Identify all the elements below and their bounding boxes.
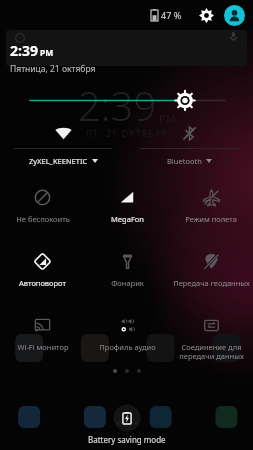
staticText: MegaFon [111, 214, 144, 224]
button[interactable]: Фонарик [85, 242, 169, 306]
button[interactable]: Bluetooth [126, 118, 253, 178]
button[interactable]: Search [6, 30, 247, 66]
staticText: Соединение для передачи данных [179, 342, 244, 361]
button[interactable]: Соединение для передачи данных [169, 306, 253, 364]
staticText: Профиль аудио [99, 342, 156, 352]
staticText: Фонарик [111, 278, 144, 288]
button[interactable]: Режим полета [169, 178, 253, 242]
staticText: PM [159, 111, 176, 126]
button[interactable]: Wi-Fi монитор [0, 306, 85, 364]
button[interactable]: MegaFon [85, 178, 169, 242]
button[interactable]: Профиль аудио [85, 306, 169, 364]
button[interactable]: Brightness [0, 80, 253, 118]
staticText: PM [40, 47, 54, 59]
staticText: 47 % [161, 9, 182, 21]
button[interactable]: Автоповорот [0, 242, 85, 306]
staticText: Автоповорот [19, 278, 66, 288]
staticText: Battery saving mode [88, 434, 166, 445]
staticText: Не беспокоить [16, 214, 70, 224]
staticText: Wi-Fi монитор [17, 342, 69, 352]
staticText: Bluetooth [167, 156, 202, 166]
button[interactable]: Не беспокоить [0, 178, 85, 242]
button[interactable]: Settings [195, 4, 217, 26]
button[interactable]: Передача геоданных [169, 242, 253, 306]
button[interactable]: ZyXEL_KEENETIC [0, 118, 126, 178]
staticText: 2:39 [78, 78, 157, 132]
staticText: 2:39 [10, 41, 38, 60]
staticText: Передача геоданных [173, 278, 250, 288]
staticText: ПТ, 21 ОКТЯБРЯ [86, 128, 168, 139]
staticText: ZyXEL_KEENETIC [29, 156, 88, 166]
staticText: Пятница, 21 октября [10, 63, 96, 75]
button[interactable]: Battery saving mode [0, 400, 253, 450]
button[interactable]: User profile [224, 5, 245, 26]
staticText: Режим полета [185, 214, 237, 224]
